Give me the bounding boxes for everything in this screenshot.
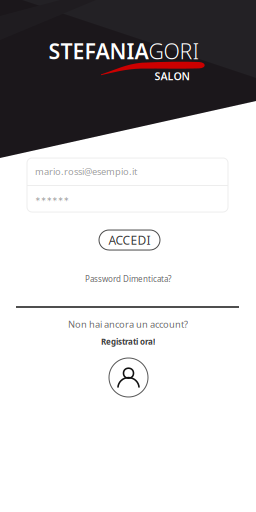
button[interactable]: Registrati ora!: [101, 336, 155, 347]
staticText: GORI: [148, 37, 199, 65]
staticText: SALON: [154, 69, 189, 83]
button[interactable]: Account: [109, 358, 148, 397]
staticText: mario.rossi@esempio.it: [35, 165, 137, 178]
staticText: Password Dimenticata?: [85, 274, 171, 284]
staticText: ACCEDI: [108, 232, 150, 248]
staticText: STEFANIA: [48, 37, 148, 65]
staticText: ∗∗∗∗∗∗: [35, 195, 69, 203]
button[interactable]: ACCEDI: [99, 230, 160, 250]
staticText: Non hai ancora un account?: [68, 318, 188, 330]
button[interactable]: Password Dimenticata?: [0, 272, 256, 286]
staticText: Registrati ora!: [101, 336, 155, 347]
